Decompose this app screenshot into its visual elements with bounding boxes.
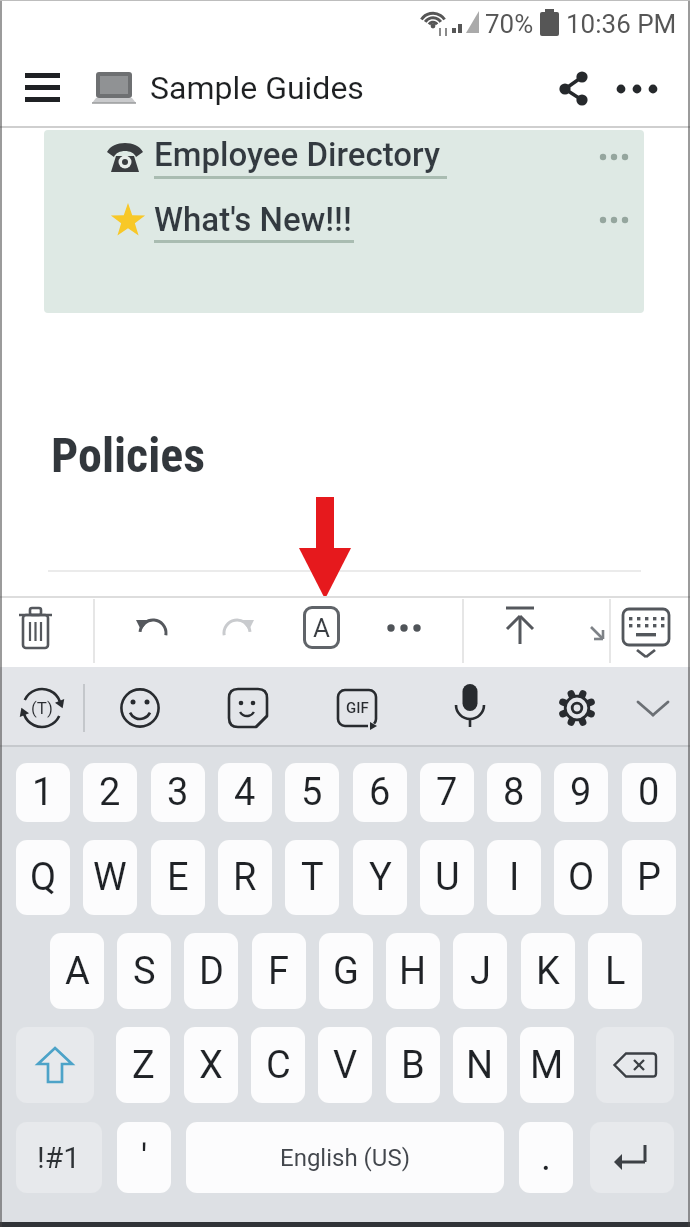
- button[interactable]: [590, 1122, 674, 1193]
- staticText: 2: [99, 770, 121, 815]
- staticText: P: [637, 855, 661, 900]
- button[interactable]: L: [588, 933, 642, 1009]
- staticText: 70%: [485, 9, 534, 39]
- button[interactable]: [616, 600, 676, 662]
- staticText: 10:36 PM: [566, 9, 677, 39]
- button[interactable]: [608, 62, 670, 114]
- button[interactable]: F: [252, 933, 306, 1009]
- staticText: B: [401, 1043, 425, 1088]
- staticText: 1: [32, 770, 54, 815]
- staticText: 3: [167, 770, 189, 815]
- button[interactable]: W: [83, 840, 137, 915]
- button[interactable]: 5: [285, 763, 339, 822]
- button[interactable]: M: [520, 1027, 574, 1103]
- staticText: C: [266, 1043, 291, 1088]
- button[interactable]: [226, 686, 270, 730]
- button[interactable]: ': [117, 1122, 171, 1193]
- button[interactable]: [10, 602, 62, 660]
- button[interactable]: [220, 610, 254, 650]
- button[interactable]: Q: [16, 840, 70, 915]
- button[interactable]: C: [251, 1027, 305, 1103]
- staticText: T: [301, 855, 324, 900]
- staticText: Y: [369, 855, 392, 900]
- button[interactable]: T: [285, 840, 339, 915]
- staticText: E: [167, 855, 189, 900]
- button[interactable]: [448, 682, 492, 734]
- staticText: G: [333, 949, 359, 994]
- button[interactable]: N: [453, 1027, 507, 1103]
- button[interactable]: [592, 211, 636, 229]
- button[interactable]: Z: [116, 1027, 170, 1103]
- staticText: ': [141, 1137, 148, 1179]
- button[interactable]: O: [554, 840, 608, 915]
- button[interactable]: A: [50, 933, 104, 1009]
- button[interactable]: [596, 1027, 674, 1103]
- staticText: 5: [301, 770, 323, 815]
- button[interactable]: [548, 62, 600, 114]
- staticText: U: [435, 855, 460, 900]
- button[interactable]: G: [319, 933, 373, 1009]
- staticText: English (US): [280, 1144, 410, 1172]
- button[interactable]: 0: [622, 763, 676, 822]
- button[interactable]: X: [184, 1027, 238, 1103]
- button[interactable]: S: [117, 933, 171, 1009]
- staticText: Employee Directory: [154, 135, 440, 174]
- button[interactable]: [136, 610, 170, 650]
- button[interactable]: GIF: [336, 688, 382, 734]
- button[interactable]: 2: [83, 763, 137, 822]
- button[interactable]: 9: [554, 763, 608, 822]
- staticText: H: [399, 949, 427, 994]
- button[interactable]: 3: [151, 763, 205, 822]
- button[interactable]: R: [218, 840, 272, 915]
- button[interactable]: 4: [218, 763, 272, 822]
- staticText: O: [568, 855, 595, 900]
- button[interactable]: English (US): [186, 1122, 504, 1193]
- staticText: A: [313, 613, 330, 643]
- button[interactable]: 6: [353, 763, 407, 822]
- button[interactable]: [118, 686, 162, 730]
- button[interactable]: !#1: [16, 1122, 102, 1193]
- button[interactable]: [14, 64, 70, 112]
- button[interactable]: P: [622, 840, 676, 915]
- button[interactable]: H: [386, 933, 440, 1009]
- staticText: A: [65, 949, 90, 994]
- staticText: L: [605, 949, 626, 994]
- staticText: Policies: [51, 427, 206, 483]
- button[interactable]: .: [519, 1122, 573, 1193]
- staticText: N: [466, 1043, 494, 1088]
- button[interactable]: A: [303, 606, 340, 649]
- staticText: 8: [503, 770, 525, 815]
- button[interactable]: What's New!!!: [154, 196, 454, 242]
- button[interactable]: D: [184, 933, 238, 1009]
- button[interactable]: Y: [353, 840, 407, 915]
- button[interactable]: V: [318, 1027, 372, 1103]
- button[interactable]: 1: [16, 763, 70, 822]
- button[interactable]: 8: [487, 763, 541, 822]
- button[interactable]: 7: [420, 763, 474, 822]
- staticText: V: [333, 1043, 358, 1088]
- staticText: I: [509, 855, 520, 900]
- button[interactable]: [592, 148, 636, 166]
- button[interactable]: [630, 692, 676, 724]
- staticText: .: [541, 1135, 552, 1180]
- staticText: !#1: [37, 1140, 81, 1175]
- staticText: What's New!!!: [154, 200, 352, 239]
- button[interactable]: [498, 600, 542, 652]
- staticText: R: [233, 855, 257, 900]
- staticText: Q: [30, 855, 57, 900]
- button[interactable]: B: [386, 1027, 440, 1103]
- button[interactable]: I: [487, 840, 541, 915]
- button[interactable]: Employee Directory: [154, 131, 454, 177]
- staticText: K: [536, 949, 560, 994]
- button[interactable]: [380, 606, 428, 650]
- button[interactable]: J: [453, 933, 507, 1009]
- button[interactable]: K: [521, 933, 575, 1009]
- staticText: 0: [638, 770, 660, 815]
- staticText: F: [268, 949, 290, 994]
- staticText: GIF: [346, 699, 369, 717]
- button[interactable]: E: [151, 840, 205, 915]
- button[interactable]: U: [420, 840, 474, 915]
- button[interactable]: [555, 686, 599, 730]
- button[interactable]: (T): [16, 682, 68, 734]
- button[interactable]: [16, 1027, 94, 1103]
